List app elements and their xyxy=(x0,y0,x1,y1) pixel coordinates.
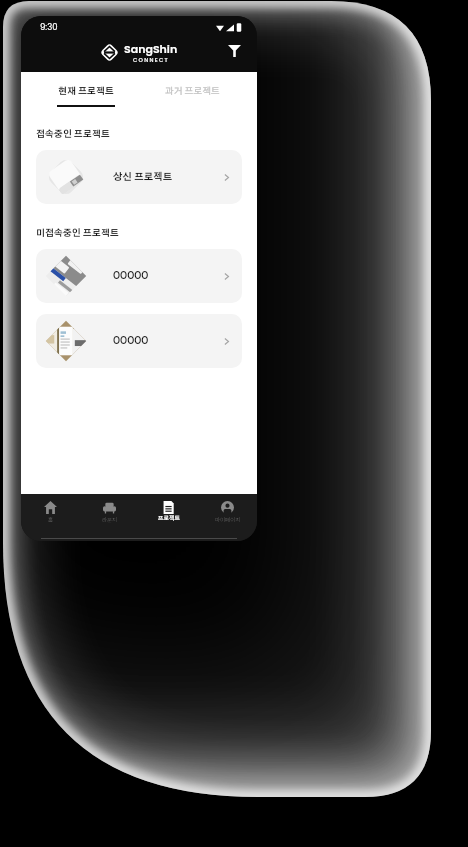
button[interactable]: OOOOO xyxy=(36,249,242,303)
staticText: 홈 xyxy=(48,516,54,524)
staticText: 9:30 xyxy=(40,21,58,33)
button[interactable]: 현재 프로젝트 xyxy=(33,72,139,110)
button[interactable]: 과거 프로젝트 xyxy=(139,72,245,110)
staticText: 미접속중인 프로젝트 xyxy=(36,229,119,238)
button[interactable]: 라운지 xyxy=(80,494,139,541)
button[interactable]: 마이페이지 xyxy=(198,494,257,541)
staticText: 과거 프로젝트 xyxy=(165,87,220,96)
button[interactable]: 프로젝트 xyxy=(139,494,198,541)
staticText: 현재 프로젝트 xyxy=(58,87,114,96)
button[interactable]: Filter xyxy=(223,40,245,62)
staticText: CONNECT xyxy=(133,56,169,64)
staticText: OOOOO xyxy=(113,271,149,281)
button[interactable]: OOOOO xyxy=(36,314,242,368)
staticText: 프로젝트 xyxy=(158,516,180,522)
staticText: 상신 프로젝트 xyxy=(113,172,173,182)
staticText: 접속중인 프로젝트 xyxy=(36,130,110,139)
button[interactable]: 상신 프로젝트 xyxy=(36,150,242,204)
button[interactable]: 홈 xyxy=(21,494,80,541)
staticText: SangShin xyxy=(124,41,178,56)
staticText: 라운지 xyxy=(102,516,118,524)
staticText: 마이페이지 xyxy=(215,516,241,524)
staticText: OOOOO xyxy=(113,336,149,346)
